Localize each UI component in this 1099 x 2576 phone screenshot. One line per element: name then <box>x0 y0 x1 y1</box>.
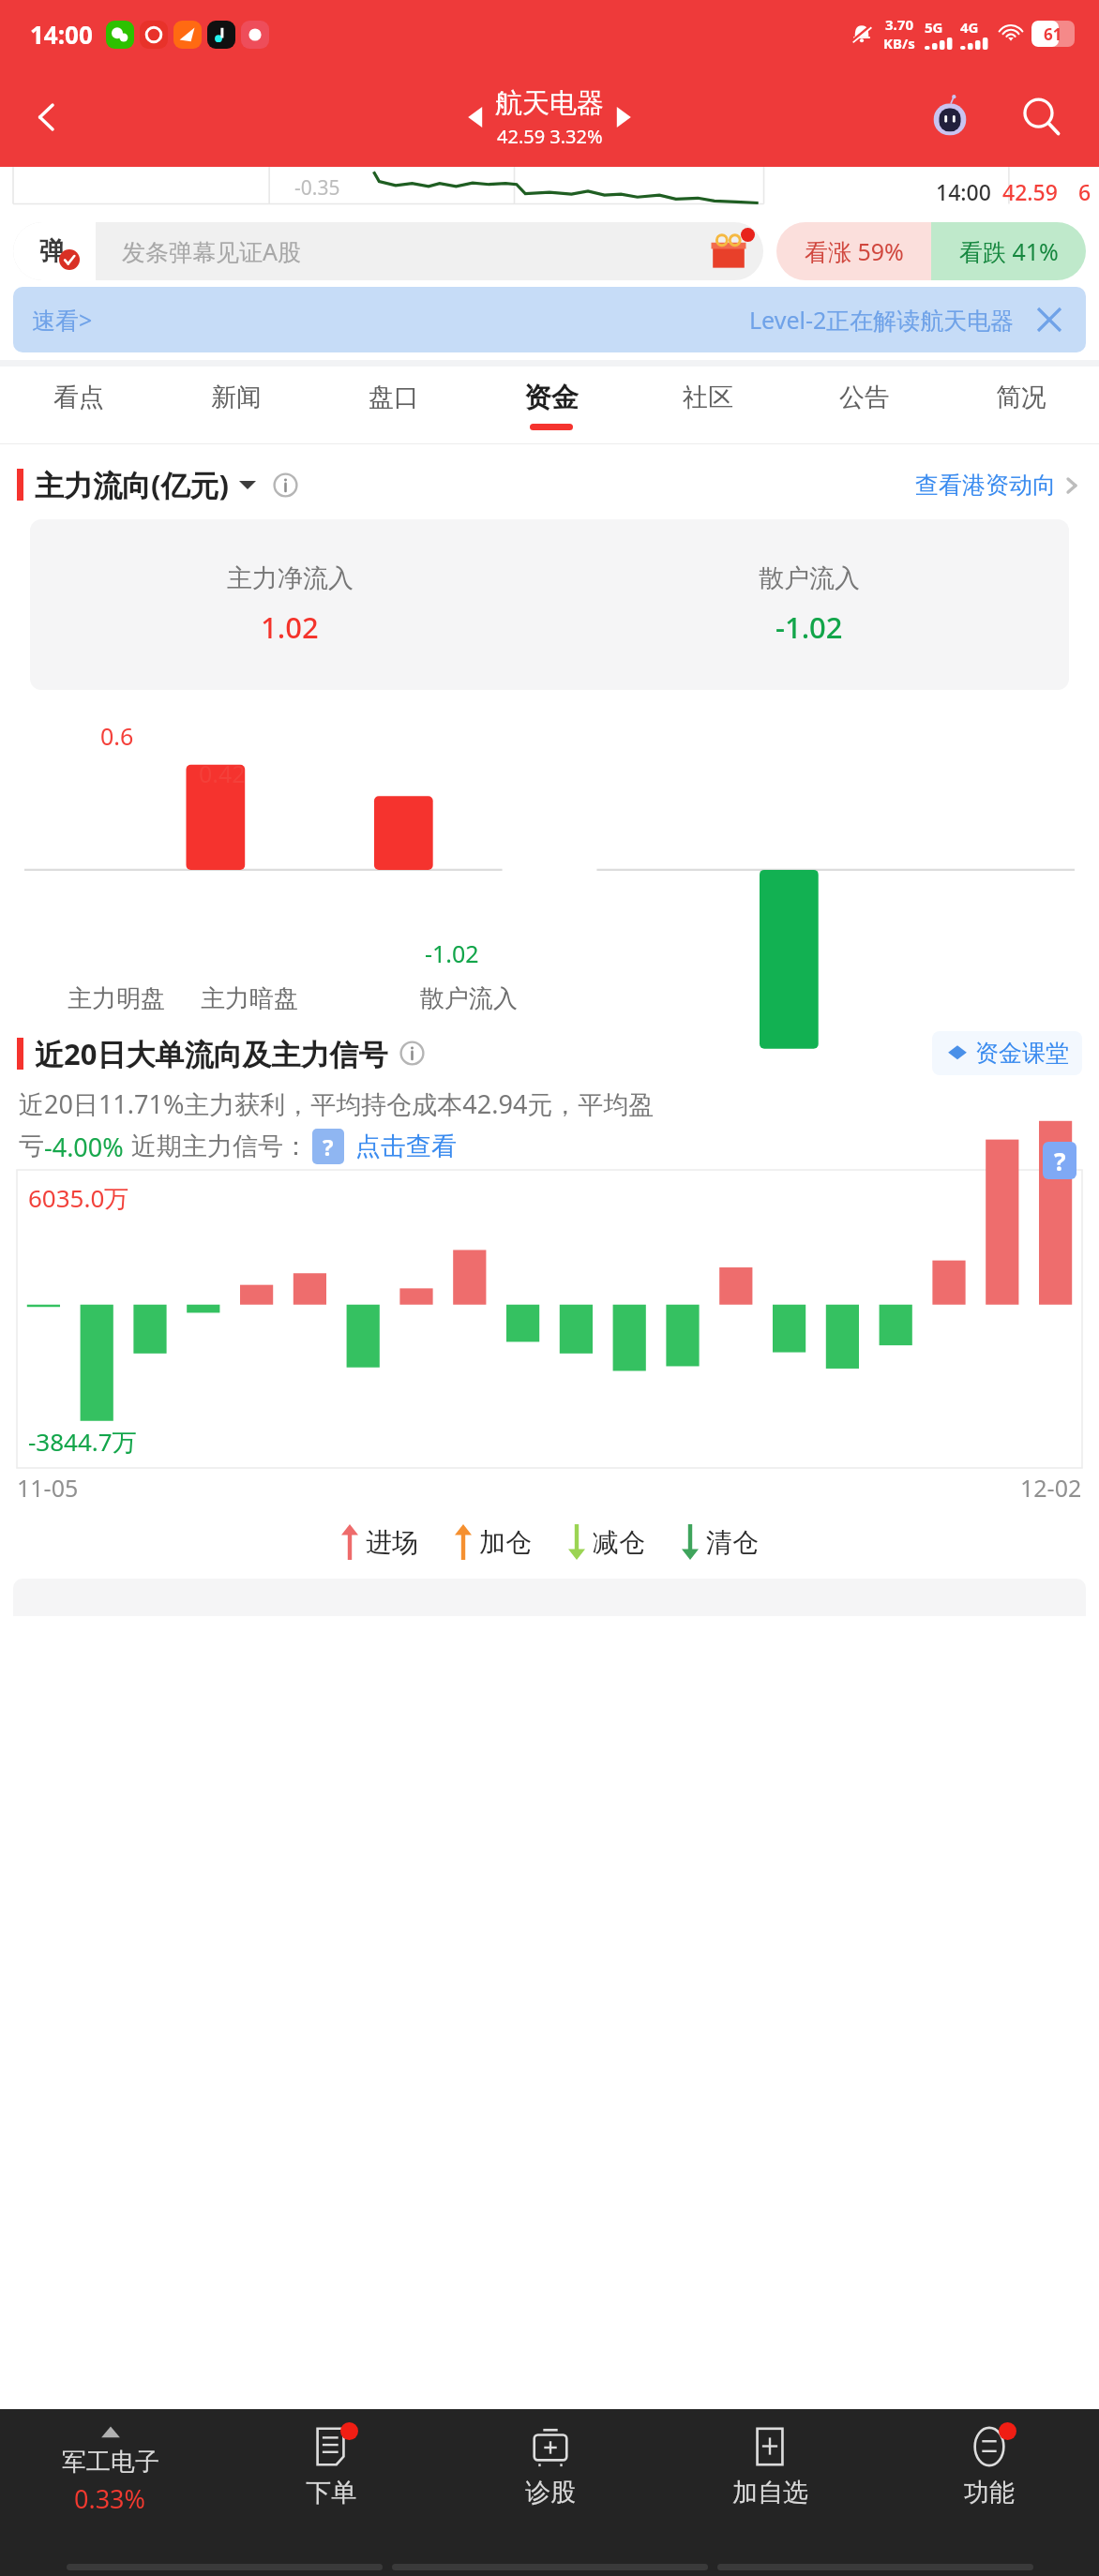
staticText: 0.6 <box>100 720 134 752</box>
staticText: 12-02 <box>1020 1472 1082 1504</box>
staticText: 3.70 <box>885 15 913 34</box>
staticText: 14:00 <box>30 18 93 51</box>
button[interactable]: 社区 <box>629 367 786 443</box>
staticText: 亏 <box>19 1131 44 1162</box>
button[interactable]: Info <box>273 472 298 498</box>
staticText: 6035.0万 <box>28 1181 129 1215</box>
staticText: 近20日大单流向及主力信号 <box>35 1034 388 1073</box>
staticText: Level-2正在解读航天电器 <box>749 304 1015 336</box>
staticText: ? <box>1054 1145 1066 1177</box>
staticText: -1.02 <box>425 937 479 969</box>
button[interactable]: Change unit <box>239 476 256 493</box>
button[interactable]: 新闻 <box>158 367 315 443</box>
button[interactable]: Previous stock <box>450 91 503 143</box>
staticText: 42.59 3.32% <box>497 124 603 149</box>
staticText: 清仓 <box>706 1526 759 1559</box>
staticText: 盘口 <box>369 382 419 413</box>
staticText: -0.35 <box>294 174 340 202</box>
staticText: 航天电器 <box>495 86 604 121</box>
staticText: 散户流入 <box>420 983 518 1014</box>
staticText: 散户流入 <box>759 562 860 594</box>
button[interactable]: 简况 <box>942 367 1099 443</box>
staticText: 下单 <box>306 2477 356 2509</box>
staticText: -4.00% <box>44 1130 124 1164</box>
staticText: 查看港资动向 <box>915 471 1056 500</box>
button[interactable]: 资金课堂 <box>932 1031 1082 1075</box>
staticText: 5G <box>925 18 943 37</box>
staticText: 功能 <box>964 2477 1015 2509</box>
staticText: 社区 <box>683 382 733 413</box>
staticText: 0.42 <box>199 757 246 789</box>
staticText: 看跌 41% <box>959 235 1059 267</box>
button[interactable]: 弹 <box>13 222 763 280</box>
staticText: 简况 <box>996 382 1046 413</box>
button[interactable]: Close banner <box>1028 298 1071 341</box>
staticText: KB/s <box>883 34 915 52</box>
staticText: -3844.7万 <box>28 1425 137 1459</box>
button[interactable]: Search <box>1009 84 1075 150</box>
button[interactable]: 诊股 <box>441 2409 660 2576</box>
staticText: 42.59 <box>1002 177 1058 206</box>
button[interactable]: 军工电子 <box>0 2409 220 2576</box>
staticText: 资金课堂 <box>975 1039 1069 1068</box>
staticText: 6 <box>1078 177 1091 206</box>
staticText: 减仓 <box>593 1526 645 1559</box>
button[interactable]: 进场 <box>340 1524 418 1560</box>
button[interactable]: 查看港资动向 <box>915 471 1082 500</box>
staticText: 资金 <box>524 381 579 415</box>
staticText: 0.33% <box>74 2481 146 2516</box>
staticText: -1.02 <box>775 607 843 647</box>
button[interactable]: 点击查看 <box>355 1131 457 1162</box>
staticText: 近20日11.71%主力获利，平均持仓成本42.94元，平均盈 <box>19 1086 655 1121</box>
button[interactable]: 资金 <box>473 367 629 443</box>
button[interactable]: 看涨 59% <box>776 222 1086 280</box>
staticText: 发条弹幕见证A股 <box>122 235 301 267</box>
staticText: 主力明盘 <box>68 983 165 1014</box>
staticText: 加仓 <box>479 1526 532 1559</box>
staticText: 主力净流入 <box>227 562 354 594</box>
staticText: 14:00 <box>936 177 991 206</box>
staticText: 加自选 <box>732 2477 808 2509</box>
button[interactable]: 看点 <box>0 367 158 443</box>
staticText: 诊股 <box>525 2477 576 2509</box>
button[interactable]: Info <box>399 1041 425 1066</box>
button[interactable]: 清仓 <box>681 1524 759 1560</box>
button[interactable]: 主力净流入 <box>30 519 549 690</box>
button[interactable]: Signal help <box>1043 1142 1076 1179</box>
staticText: 速看> <box>32 304 93 336</box>
button[interactable]: 盘口 <box>315 367 473 443</box>
staticText: 近期主力信号： <box>131 1131 309 1162</box>
button[interactable]: 加仓 <box>454 1524 532 1560</box>
button[interactable]: AI assistant <box>921 88 979 146</box>
staticText: 61 <box>1044 23 1062 45</box>
staticText: 弹 <box>39 235 65 267</box>
staticText: 公告 <box>839 382 890 413</box>
button[interactable]: 功能 <box>880 2409 1099 2576</box>
staticText: 4G <box>960 18 979 37</box>
staticText: 主力暗盘 <box>201 983 298 1014</box>
staticText: 11-05 <box>17 1472 79 1504</box>
staticText: 看涨 59% <box>805 235 904 267</box>
button[interactable]: Next stock <box>596 91 649 143</box>
button[interactable]: 减仓 <box>567 1524 645 1560</box>
button[interactable]: 加自选 <box>660 2409 880 2576</box>
staticText: 1.02 <box>261 607 319 647</box>
button[interactable]: 散户流入 <box>549 519 1069 690</box>
staticText: 主力流向(亿元) <box>35 465 230 504</box>
staticText: 新闻 <box>211 382 262 413</box>
button[interactable]: 公告 <box>786 367 942 443</box>
staticText: 看点 <box>53 382 104 413</box>
staticText: 进场 <box>366 1526 418 1559</box>
button[interactable]: 下单 <box>220 2409 441 2576</box>
button[interactable]: 速看> <box>13 287 1086 352</box>
staticText: ? <box>323 1131 334 1162</box>
staticText: 军工电子 <box>62 2447 159 2478</box>
button[interactable]: Back <box>17 87 77 147</box>
